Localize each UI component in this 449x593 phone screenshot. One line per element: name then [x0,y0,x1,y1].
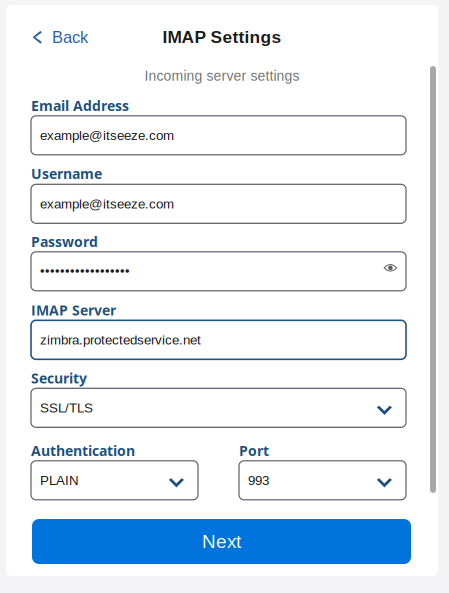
staticText: •••••••••••••••••• [40,264,130,278]
button[interactable]: SSL/TLS [31,388,406,427]
staticText: 993 [248,473,269,488]
button[interactable]: Show password [384,263,397,272]
staticText: Next [202,531,241,552]
staticText: example@itseeze.com [40,196,174,211]
button[interactable]: Next [32,519,411,564]
staticText: IMAP Server [31,300,116,320]
button[interactable]: Back [25,21,95,53]
staticText: IMAP Settings [162,27,281,47]
staticText: Password [31,232,98,251]
staticText: Port [239,441,269,460]
staticText: zimbra.protectedservice.net [40,332,201,347]
staticText: Incoming server settings [144,68,299,84]
staticText: Email Address [31,96,129,115]
staticText: PLAIN [40,473,79,488]
staticText: example@itseeze.com [40,128,174,143]
staticText: Security [31,368,87,388]
staticText: SSL/TLS [40,400,93,415]
staticText: Back [52,28,88,46]
staticText: Username [31,164,102,183]
button[interactable]: 993 [239,461,406,500]
staticText: Authentication [31,441,135,460]
button[interactable]: PLAIN [31,461,198,500]
